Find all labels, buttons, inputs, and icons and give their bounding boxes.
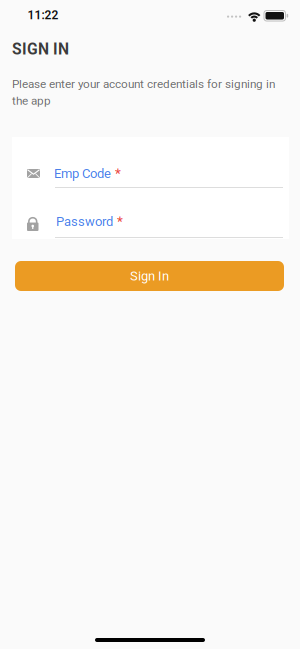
staticText: SIGN IN (12, 40, 69, 58)
staticText: Sign In (130, 268, 169, 284)
button[interactable]: Sign In (15, 261, 284, 291)
staticText: * (117, 213, 123, 229)
staticText: * (115, 165, 121, 181)
staticText: 11:22 (27, 8, 58, 22)
staticText: Please enter your account credentials fo… (12, 77, 275, 107)
staticText: Password (56, 214, 113, 229)
staticText: Emp Code (54, 166, 111, 181)
button[interactable]: Emp Code (27, 165, 283, 188)
button[interactable]: Password (27, 212, 283, 238)
